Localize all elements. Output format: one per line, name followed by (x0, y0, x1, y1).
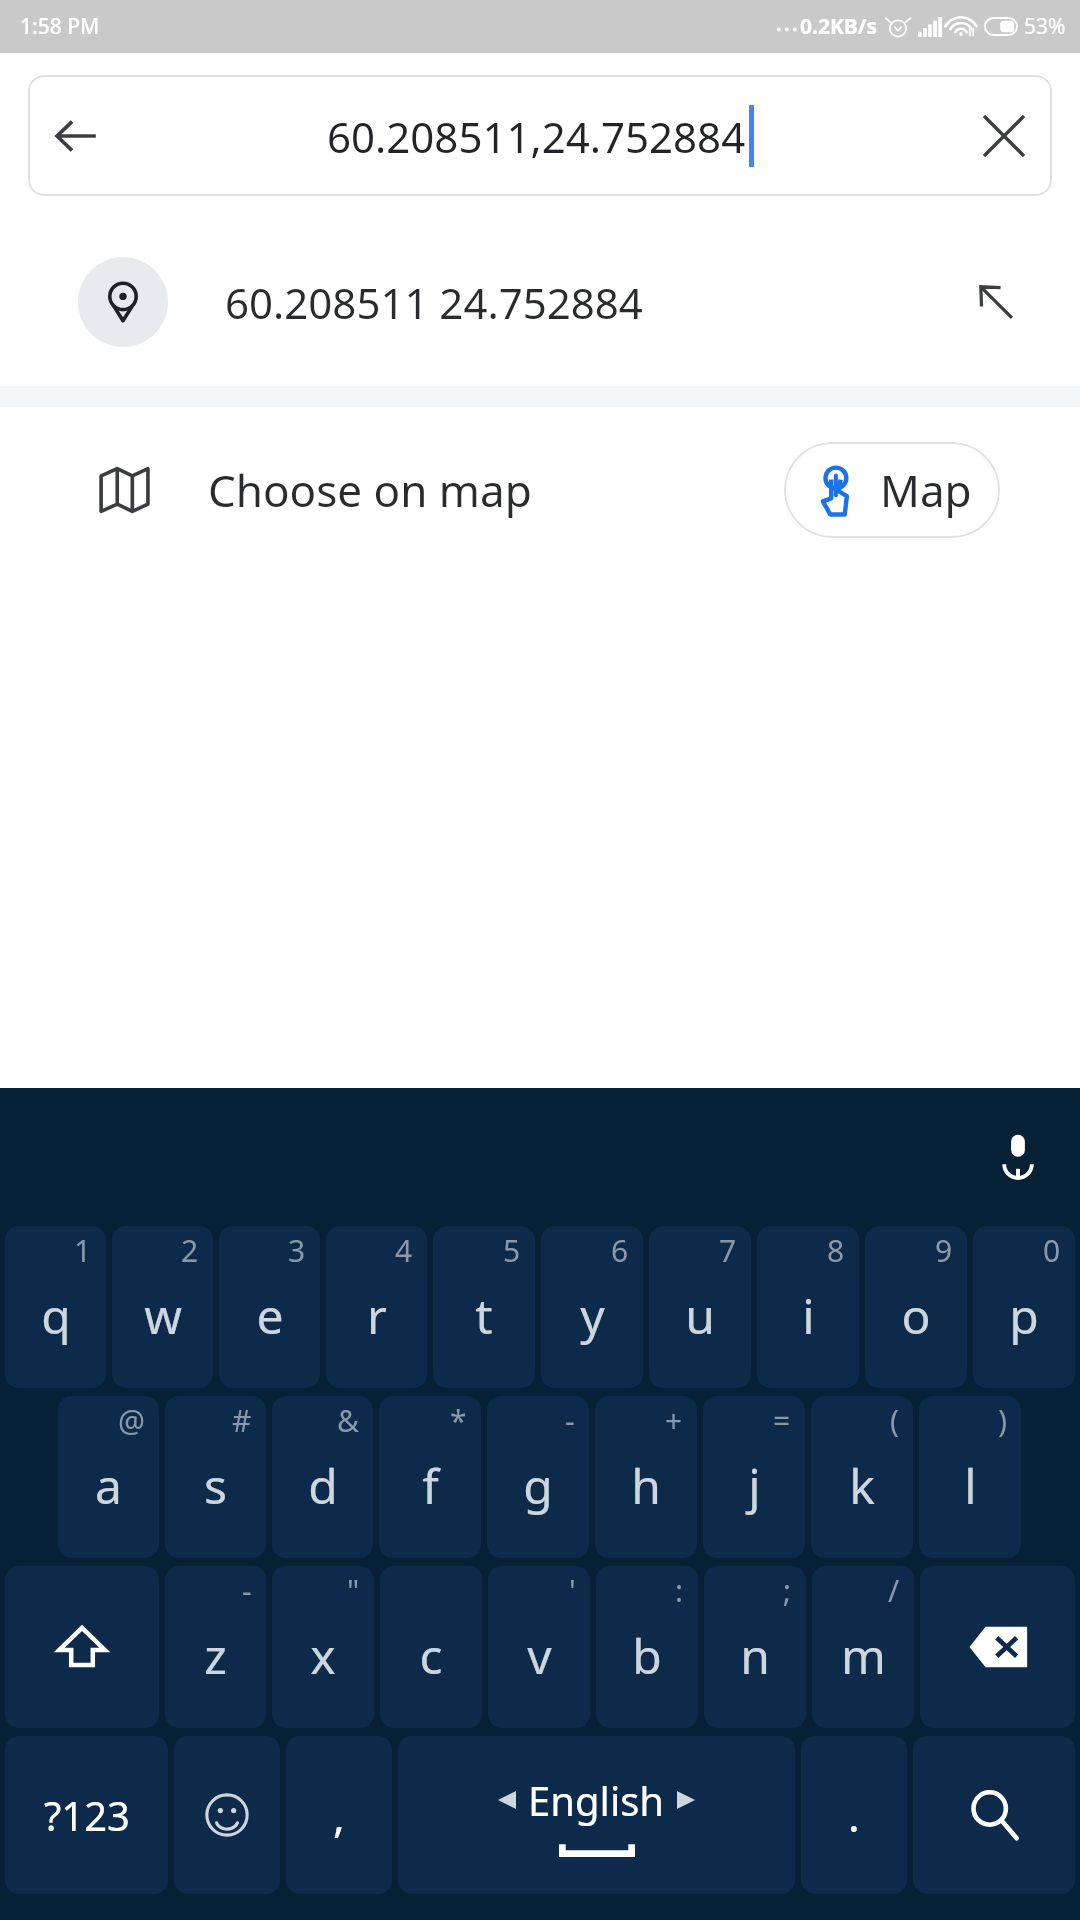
staticText: : (675, 1570, 684, 1611)
button[interactable]: * (379, 1396, 481, 1558)
staticText: + (665, 1400, 683, 1441)
button[interactable]: - (487, 1396, 589, 1558)
button[interactable]: = (703, 1396, 805, 1558)
staticText: * (450, 1400, 467, 1441)
button[interactable]: Choose on map (0, 407, 1080, 572)
staticText: m (841, 1623, 886, 1688)
staticText: 60.208511,24.752884 (327, 108, 746, 165)
button[interactable]: ' (488, 1566, 590, 1728)
staticText: 9 (935, 1230, 953, 1271)
button[interactable]: 6 (541, 1226, 643, 1388)
button[interactable]: ; (704, 1566, 806, 1728)
button[interactable]: ( (811, 1396, 913, 1558)
staticText: 2 (181, 1230, 199, 1271)
staticText: ' (569, 1570, 576, 1611)
button[interactable]: ?123 (5, 1736, 168, 1894)
staticText: c (419, 1623, 443, 1688)
staticText: p (1009, 1283, 1039, 1348)
staticText: / (888, 1570, 900, 1611)
staticText: ( (890, 1400, 899, 1441)
button[interactable]: Emoji (174, 1736, 280, 1894)
button[interactable]: # (165, 1396, 266, 1558)
button[interactable]: 7 (649, 1226, 751, 1388)
staticText: f (422, 1453, 439, 1518)
staticText: 60.208511 24.752884 (225, 274, 643, 331)
button[interactable]: & (272, 1396, 373, 1558)
button[interactable]: - (165, 1566, 266, 1728)
staticText: y (580, 1283, 605, 1348)
staticText: h (631, 1453, 661, 1518)
staticText: z (204, 1623, 227, 1688)
staticText: r (367, 1283, 387, 1348)
staticText: = (773, 1400, 791, 1441)
staticText: u (685, 1283, 715, 1348)
button[interactable]: 0 (973, 1226, 1075, 1388)
staticText: . (848, 1785, 860, 1845)
button[interactable]: Voice input (980, 1117, 1056, 1193)
staticText: ; (783, 1570, 792, 1611)
staticText: o (901, 1283, 931, 1348)
staticText: g (523, 1453, 553, 1518)
staticText: 0.2KB/s (800, 12, 878, 41)
staticText: 4 (395, 1230, 413, 1271)
staticText: q (41, 1283, 71, 1348)
button[interactable]: / (812, 1566, 914, 1728)
button[interactable]: 9 (865, 1226, 967, 1388)
staticText: j (748, 1453, 761, 1518)
staticText: # (232, 1400, 252, 1441)
staticText: d (308, 1453, 338, 1518)
button[interactable]: . (801, 1736, 907, 1894)
staticText: ?123 (44, 1788, 130, 1842)
staticText: - (242, 1570, 252, 1611)
staticText: " (347, 1570, 360, 1611)
staticText: 6 (611, 1230, 629, 1271)
staticText: Map (880, 460, 972, 520)
button[interactable]: , (286, 1736, 392, 1894)
button[interactable]: Map (784, 442, 1000, 538)
staticText: 53% (1024, 12, 1066, 41)
button[interactable]: 4 (326, 1226, 427, 1388)
button[interactable]: 5 (433, 1226, 535, 1388)
staticText: w (144, 1283, 182, 1348)
button[interactable]: @ (58, 1396, 159, 1558)
staticText: t (475, 1283, 493, 1348)
staticText: l (964, 1453, 977, 1518)
staticText: 1 (74, 1230, 92, 1271)
staticText: v (527, 1623, 552, 1688)
staticText: s (204, 1453, 227, 1518)
button[interactable]: Use suggestion (960, 266, 1032, 338)
staticText: a (95, 1453, 122, 1518)
staticText: 7 (719, 1230, 737, 1271)
staticText: ) (998, 1400, 1007, 1441)
staticText: 1:58 PM (20, 12, 100, 41)
staticText: k (849, 1453, 875, 1518)
staticText: i (802, 1283, 815, 1348)
button[interactable]: Space (398, 1736, 795, 1894)
staticText: & (337, 1400, 359, 1441)
staticText: 8 (827, 1230, 845, 1271)
button[interactable]: 2 (112, 1226, 213, 1388)
button[interactable]: : (596, 1566, 698, 1728)
button[interactable]: 3 (219, 1226, 320, 1388)
staticText: x (310, 1623, 336, 1688)
staticText: e (256, 1283, 284, 1348)
staticText: b (632, 1623, 662, 1688)
button[interactable]: ) (919, 1396, 1021, 1558)
button[interactable]: 60.208511 24.752884 (0, 218, 1080, 386)
staticText: 0 (1043, 1230, 1061, 1271)
staticText: , (333, 1785, 345, 1845)
button[interactable]: Search (913, 1736, 1075, 1894)
button[interactable]: Shift (5, 1566, 159, 1728)
button[interactable]: + (595, 1396, 697, 1558)
button[interactable]: " (272, 1566, 374, 1728)
button[interactable]: Clear (956, 88, 1052, 184)
staticText: Choose on map (208, 460, 532, 520)
staticText: 3 (288, 1230, 306, 1271)
button[interactable]: Back (28, 88, 124, 184)
staticText: - (565, 1400, 575, 1441)
button[interactable]: c (380, 1566, 482, 1728)
button[interactable]: Backspace (920, 1566, 1075, 1728)
staticText: n (740, 1623, 770, 1688)
button[interactable]: 8 (757, 1226, 859, 1388)
button[interactable]: 1 (5, 1226, 106, 1388)
